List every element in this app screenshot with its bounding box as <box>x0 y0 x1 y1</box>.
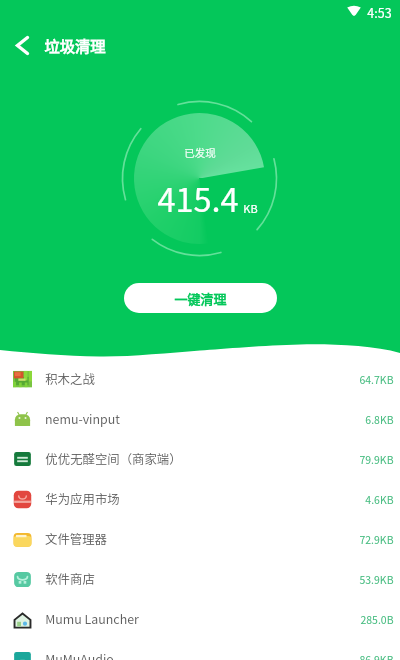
staticText: KB <box>243 200 258 216</box>
staticText: 软件商店 <box>45 570 95 588</box>
button[interactable]: 积木之战 <box>0 359 400 399</box>
staticText: MuMuAudio <box>45 650 114 660</box>
staticText: nemu-vinput <box>45 410 120 428</box>
staticText: 79.9KB <box>359 452 394 467</box>
staticText: 华为应用市场 <box>45 490 120 508</box>
staticText: 6.8KB <box>365 412 394 427</box>
button[interactable]: MuMuAudio <box>0 639 400 660</box>
staticText: 64.7KB <box>359 372 394 387</box>
staticText: 4.6KB <box>365 492 394 507</box>
staticText: 72.9KB <box>359 532 394 547</box>
staticText: 已发现 <box>184 145 216 160</box>
button[interactable]: 一键清理 <box>124 283 277 313</box>
button[interactable]: Back <box>0 25 44 65</box>
button[interactable]: Mumu Launcher <box>0 599 400 639</box>
staticText: 4:53 <box>367 3 392 21</box>
button[interactable]: 优优无醛空间（商家端） <box>0 439 400 479</box>
staticText: 积木之战 <box>45 370 95 388</box>
staticText: 53.9KB <box>359 572 394 587</box>
staticText: 415.4 <box>157 174 239 221</box>
staticText: 285.0B <box>360 612 394 627</box>
button[interactable]: nemu-vinput <box>0 399 400 439</box>
staticText: 一键清理 <box>174 289 227 308</box>
staticText: 86.9KB <box>359 652 394 660</box>
button[interactable]: 华为应用市场 <box>0 479 400 519</box>
button[interactable]: 软件商店 <box>0 559 400 599</box>
staticText: Mumu Launcher <box>45 610 139 628</box>
button[interactable]: 文件管理器 <box>0 519 400 559</box>
staticText: 垃圾清理 <box>44 34 106 56</box>
staticText: 文件管理器 <box>45 530 107 548</box>
staticText: 优优无醛空间（商家端） <box>45 450 182 468</box>
